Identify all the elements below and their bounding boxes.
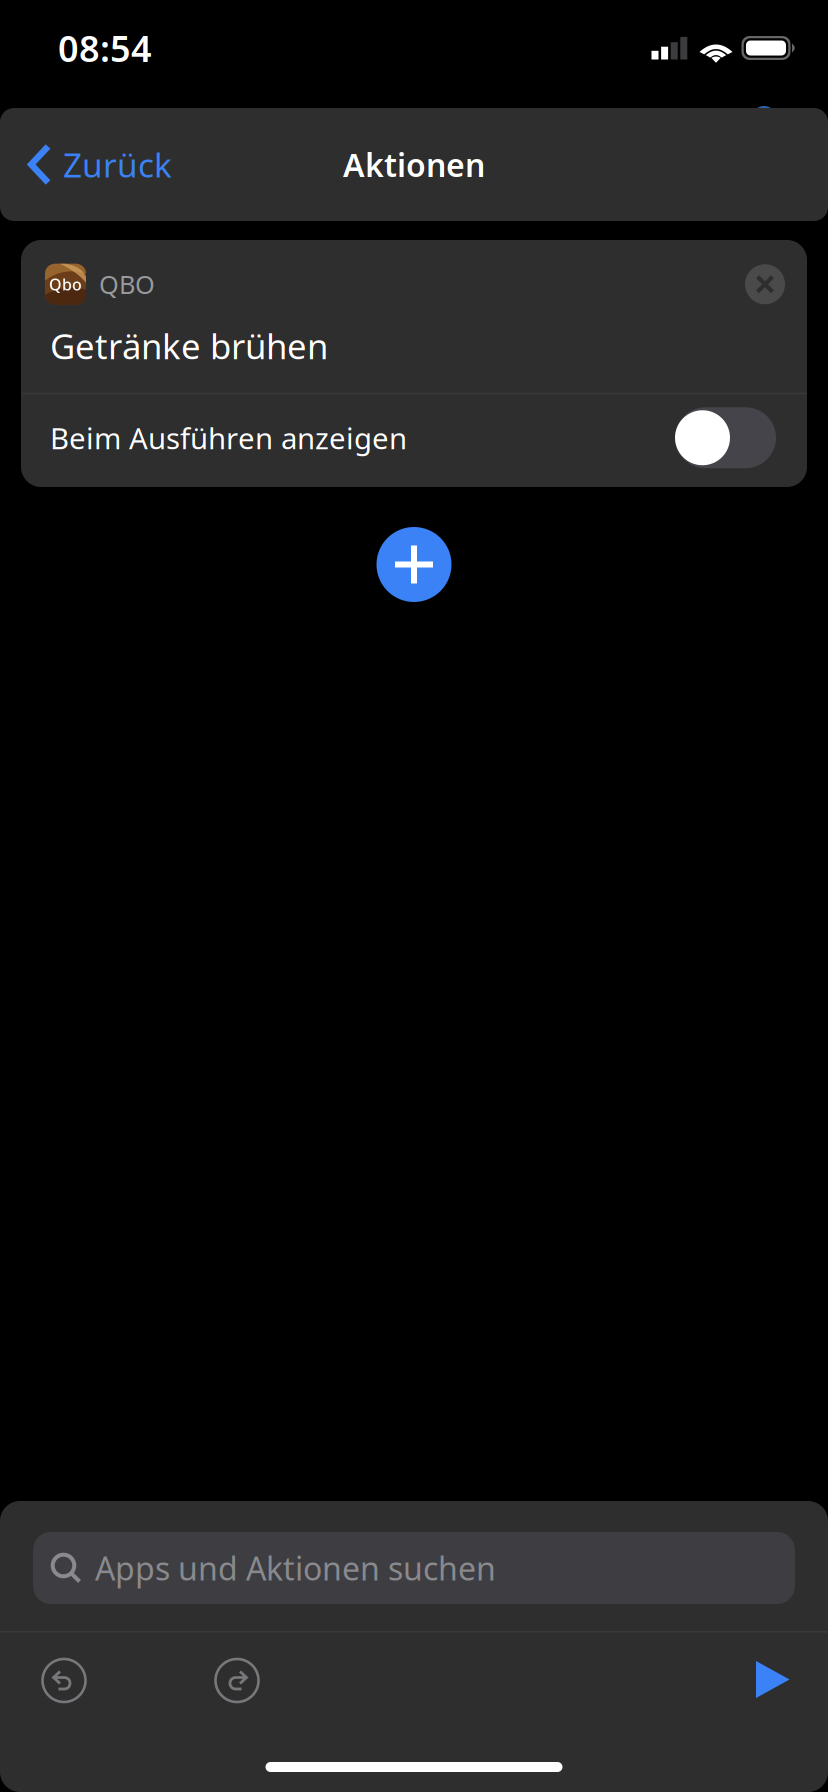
button[interactable]: Beim Ausführen anzeigen: [675, 407, 776, 468]
staticText: Beim Ausführen anzeigen: [50, 418, 407, 457]
staticText: Apps und Aktionen suchen: [95, 1547, 496, 1589]
staticText: QBO: [99, 267, 155, 301]
staticText: Getränke brühen: [50, 323, 328, 369]
button[interactable]: Zurück: [0, 124, 188, 205]
button[interactable]: Wiederholen: [210, 1645, 264, 1699]
button[interactable]: Aktion entfernen: [745, 264, 785, 304]
button[interactable]: Ausführen: [740, 1643, 806, 1702]
button[interactable]: Apps und Aktionen suchen: [33, 1532, 795, 1604]
staticText: Aktionen: [343, 143, 485, 186]
button[interactable]: Aktion hinzufügen: [376, 527, 451, 602]
staticText: 08:54: [58, 24, 152, 72]
staticText: Zurück: [63, 142, 172, 187]
button[interactable]: Widerrufen: [37, 1645, 91, 1699]
staticText: Qbo: [49, 274, 82, 295]
